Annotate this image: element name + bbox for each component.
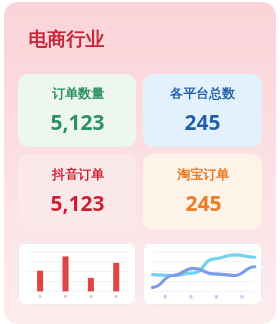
button[interactable]: Bar chart [18,243,136,305]
staticText: 245 [184,108,221,137]
button[interactable]: 抖音订单 [18,154,136,230]
staticText: 5,123 [50,108,105,137]
button[interactable]: 订单数量 [18,74,136,147]
staticText: 245 [185,189,222,218]
staticText: 抖音订单 [52,166,104,182]
staticText: 5,123 [50,189,105,218]
button[interactable]: Line chart [143,243,262,305]
button[interactable]: 各平台总数 [143,74,262,147]
staticText: 各平台总数 [170,85,235,101]
button[interactable]: 淘宝订单 [143,154,262,230]
staticText: 订单数量 [52,85,104,101]
staticText: 电商行业 [28,28,104,52]
staticText: 淘宝订单 [177,166,229,182]
